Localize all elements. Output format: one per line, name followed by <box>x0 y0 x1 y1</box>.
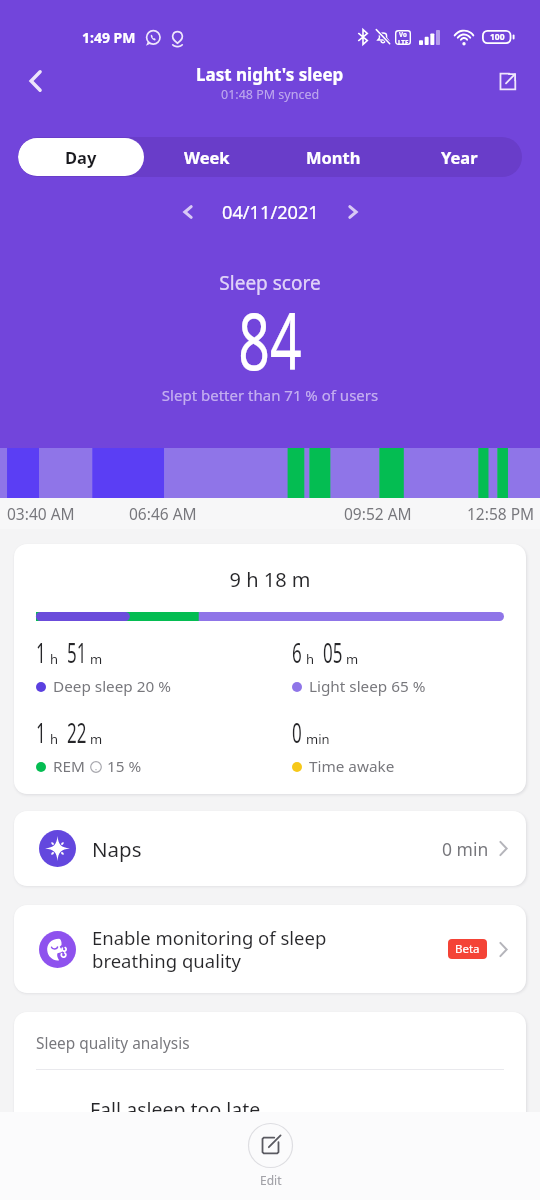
staticText: m <box>90 650 103 668</box>
staticText: 04/11/2021 <box>222 200 319 225</box>
staticText: 15 % <box>107 756 142 777</box>
staticText: Light sleep 65 % <box>309 676 426 697</box>
staticText: 1 <box>36 634 46 671</box>
staticText: 05 <box>323 634 342 671</box>
button[interactable]: Week <box>144 137 270 177</box>
staticText: 84 <box>78 287 462 393</box>
staticText: 09:52 AM <box>344 503 412 524</box>
staticText: 9 h 18 m <box>14 566 526 593</box>
staticText: 03:40 AM <box>7 503 75 524</box>
staticText: 100 <box>490 31 505 43</box>
staticText: Beta <box>455 941 480 957</box>
staticText: Fall asleep too late <box>90 1096 261 1123</box>
staticText: h <box>50 650 59 668</box>
staticText: Vo <box>399 30 407 38</box>
button[interactable]: Day <box>18 138 144 176</box>
staticText: Sleep quality analysis <box>36 1033 190 1054</box>
staticText: Day <box>65 146 97 168</box>
staticText: Enable monitoring of sleep breathing qua… <box>92 925 327 973</box>
button[interactable]: Back <box>12 58 58 104</box>
staticText: 01:48 PM synced <box>221 86 320 103</box>
staticText: 1:49 PM <box>82 28 136 47</box>
staticText: h <box>306 650 315 668</box>
staticText: Year <box>441 146 478 168</box>
staticText: min <box>306 730 330 748</box>
staticText: Naps <box>92 835 142 863</box>
staticText: REM <box>53 756 85 777</box>
staticText: 0 <box>292 714 302 751</box>
button[interactable]: Edit <box>248 1123 293 1188</box>
staticText: m <box>90 730 103 748</box>
staticText: Edit <box>260 1172 282 1188</box>
staticText: 51 <box>67 634 86 671</box>
staticText: Sleep score <box>0 270 540 296</box>
staticText: Month <box>306 146 361 168</box>
staticText: 12:58 PM <box>467 503 535 524</box>
button[interactable]: Year <box>396 137 522 177</box>
staticText: 1 <box>36 714 46 751</box>
staticText: Week <box>184 146 230 168</box>
staticText: m <box>346 650 359 668</box>
staticText: 6 <box>292 634 302 671</box>
staticText: LTE <box>398 38 409 45</box>
button[interactable]: Next day <box>335 194 371 230</box>
staticText: 22 <box>67 714 86 751</box>
staticText: Time awake <box>309 756 395 777</box>
staticText: Last night's sleep <box>196 63 344 86</box>
staticText: Deep sleep 20 % <box>53 676 171 697</box>
button[interactable]: Enable monitoring of sleep breathing qua… <box>39 905 508 993</box>
staticText: h <box>50 730 59 748</box>
staticText: 06:46 AM <box>129 503 197 524</box>
button[interactable]: Month <box>270 137 396 177</box>
staticText: 0 min <box>442 837 489 861</box>
staticText: Slept better than 71 % of users <box>0 385 540 405</box>
button[interactable]: Naps <box>39 811 508 886</box>
button[interactable]: Share <box>484 58 530 104</box>
button[interactable]: Previous day <box>170 194 206 230</box>
